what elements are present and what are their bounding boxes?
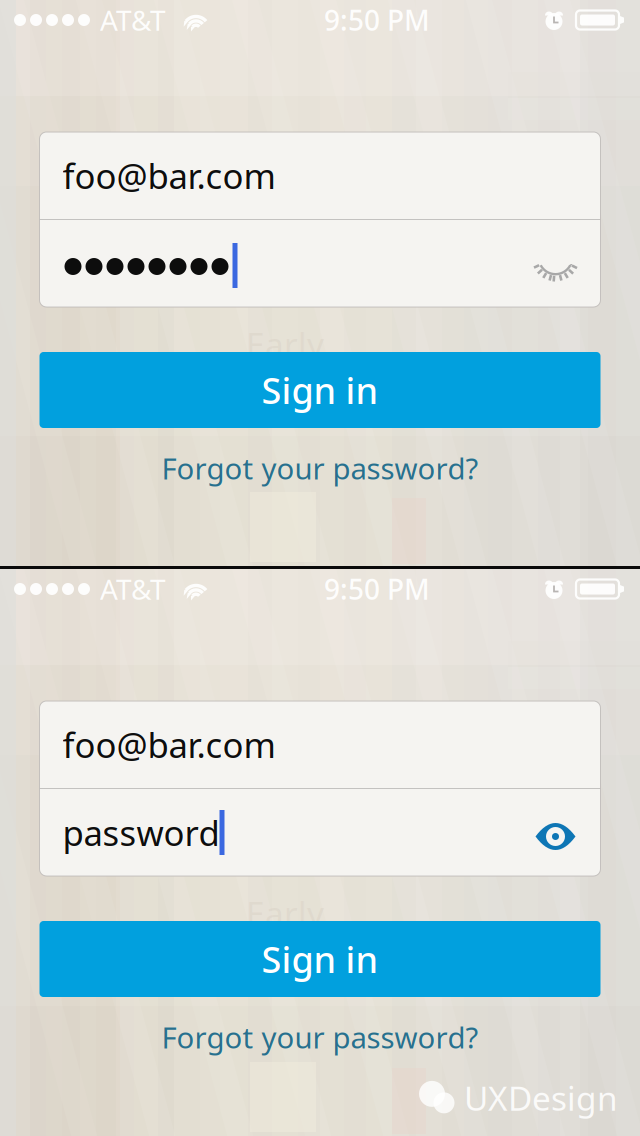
button[interactable]: Show password xyxy=(525,227,585,299)
staticText: Sign in xyxy=(261,935,378,983)
button[interactable]: Sign in xyxy=(39,921,600,997)
button[interactable]: Hide password xyxy=(525,796,585,868)
button[interactable]: Forgot your password? xyxy=(39,440,600,496)
button[interactable]: Forgot your password? xyxy=(39,1009,600,1065)
staticText: Forgot your password? xyxy=(161,1017,478,1056)
staticText: AT&T xyxy=(100,1,166,39)
staticText: password xyxy=(62,809,219,855)
staticText: UXDesign xyxy=(464,1076,618,1120)
button[interactable]: Sign in xyxy=(39,352,600,428)
staticText: foo@bar.com xyxy=(62,721,275,767)
staticText: Sign in xyxy=(261,366,378,414)
staticText: AT&T xyxy=(100,570,166,608)
staticText: foo@bar.com xyxy=(62,152,275,198)
staticText: 9:50 PM xyxy=(324,570,430,608)
staticText: Forgot your password? xyxy=(161,448,478,487)
staticText: Early xyxy=(246,322,324,366)
staticText: 9:50 PM xyxy=(324,1,430,39)
staticText: Early xyxy=(246,891,324,935)
